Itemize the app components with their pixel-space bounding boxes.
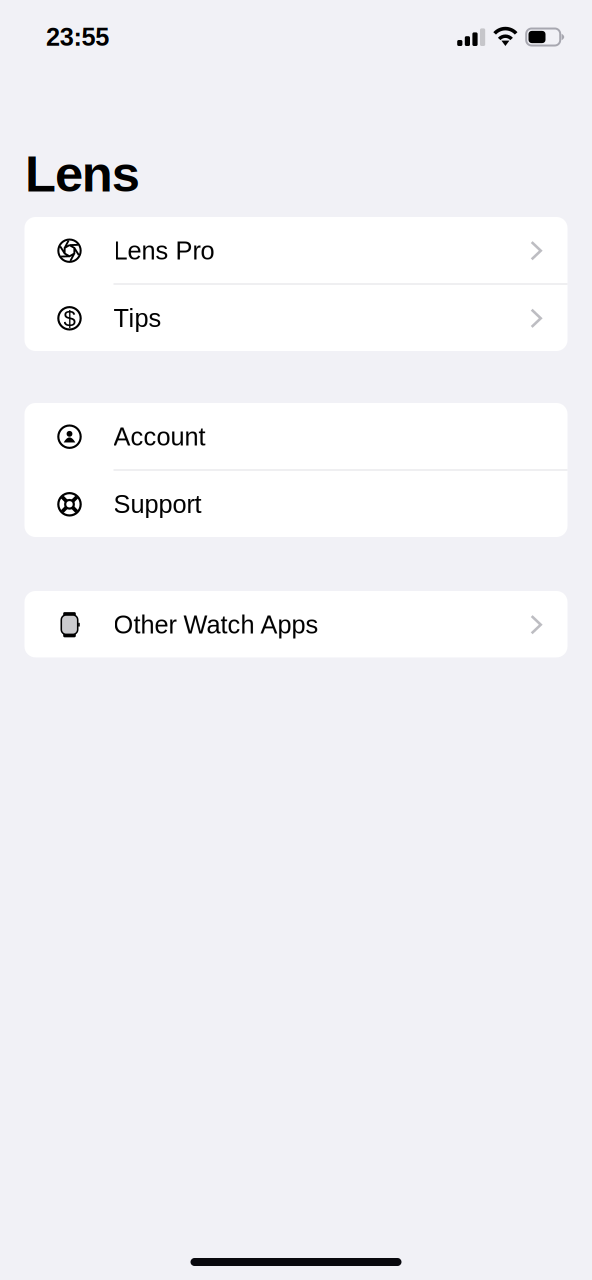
staticText: $ bbox=[63, 306, 75, 331]
staticText: Other Watch Apps bbox=[113, 610, 318, 639]
staticText: Lens bbox=[25, 146, 140, 202]
button[interactable]: $ bbox=[24, 285, 567, 351]
button[interactable]: Other Watch Apps bbox=[24, 591, 567, 657]
staticText: Lens Pro bbox=[113, 236, 214, 265]
button[interactable]: Support bbox=[24, 471, 567, 537]
button[interactable]: Lens Pro bbox=[24, 217, 567, 283]
button[interactable]: Account bbox=[24, 403, 567, 469]
staticText: Tips bbox=[113, 304, 161, 332]
staticText: Support bbox=[113, 490, 201, 518]
staticText: Account bbox=[113, 422, 205, 451]
staticText: 23:55 bbox=[46, 23, 109, 51]
